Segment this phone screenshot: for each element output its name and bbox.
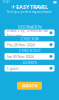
staticText: Thu 28 Nov 2024: [6, 42, 34, 47]
staticText: SEARCH: [21, 83, 37, 88]
staticText: DESTINATION: [17, 24, 41, 29]
staticText: CHECK IN: [20, 36, 38, 41]
button[interactable]: SEARCH: [17, 82, 42, 90]
staticText: CHECK OUT: [18, 48, 40, 53]
button[interactable]: Dubai City, United Arab Emirates: [4, 30, 54, 36]
staticText: ✈: [11, 4, 15, 10]
button[interactable]: Sat 30 Nov 2024: [4, 53, 54, 60]
staticText: EASY TRAVEL: [16, 3, 48, 11]
staticText: Sat 30 Nov 2024: [6, 54, 33, 59]
button[interactable]: 1 guest: [4, 65, 54, 71]
staticText: 9:41: [3, 0, 10, 4]
staticText: Dubai City, United Arab Emirates: [6, 27, 47, 38]
staticText: ▮▮▮: [53, 0, 56, 3]
staticText: 1 guest: [6, 66, 18, 71]
staticText: Find your perfect stay worldwide: [7, 10, 52, 14]
staticText: GUESTS: [22, 60, 36, 65]
button[interactable]: Thu 28 Nov 2024: [4, 41, 54, 48]
